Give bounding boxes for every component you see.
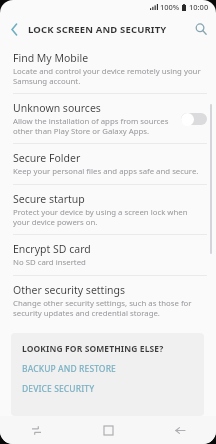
staticText: LOOKING FOR SOMETHING ELSE? bbox=[22, 343, 164, 355]
staticText: Unknown sources bbox=[13, 101, 101, 115]
button[interactable]: Unknown sources bbox=[181, 112, 207, 126]
staticText: Change other security settings, such as … bbox=[13, 298, 192, 318]
staticText: Secure startup bbox=[13, 192, 85, 206]
button[interactable]: Encrypt SD card bbox=[0, 235, 216, 276]
button[interactable]: DEVICE SECURITY bbox=[22, 383, 194, 395]
button[interactable]: Back bbox=[144, 416, 216, 444]
staticText: LOCK SCREEN AND SECURITY bbox=[28, 23, 167, 36]
button[interactable]: Other security settings bbox=[0, 276, 216, 325]
staticText: Secure Folder bbox=[13, 151, 81, 165]
staticText: Find My Mobile bbox=[13, 51, 89, 65]
staticText: Keep your personal files and apps safe a… bbox=[13, 166, 199, 177]
staticText: DEVICE SECURITY bbox=[22, 383, 95, 395]
staticText: 10:00 bbox=[189, 2, 209, 12]
button[interactable]: Secure Folder bbox=[0, 144, 216, 185]
button[interactable]: BACKUP AND RESTORE bbox=[22, 363, 194, 375]
button[interactable]: Find My Mobile bbox=[0, 44, 216, 94]
button[interactable]: Search bbox=[186, 14, 216, 44]
staticText: Protect your device by using a screen lo… bbox=[13, 207, 188, 227]
staticText: Other security settings bbox=[13, 283, 126, 297]
staticText: BACKUP AND RESTORE bbox=[22, 363, 116, 375]
staticText: No SD card inserted bbox=[13, 257, 86, 268]
staticText: Locate and control your device remotely … bbox=[13, 66, 201, 86]
button[interactable]: Home bbox=[72, 416, 144, 444]
staticText: Allow the installation of apps from sour… bbox=[13, 116, 169, 136]
button[interactable]: Unknown sources bbox=[0, 94, 216, 144]
button[interactable]: Recents bbox=[0, 416, 72, 444]
button[interactable]: Secure startup bbox=[0, 185, 216, 235]
button[interactable]: Back bbox=[0, 15, 28, 43]
staticText: Encrypt SD card bbox=[13, 242, 91, 256]
staticText: 100% bbox=[160, 2, 180, 12]
